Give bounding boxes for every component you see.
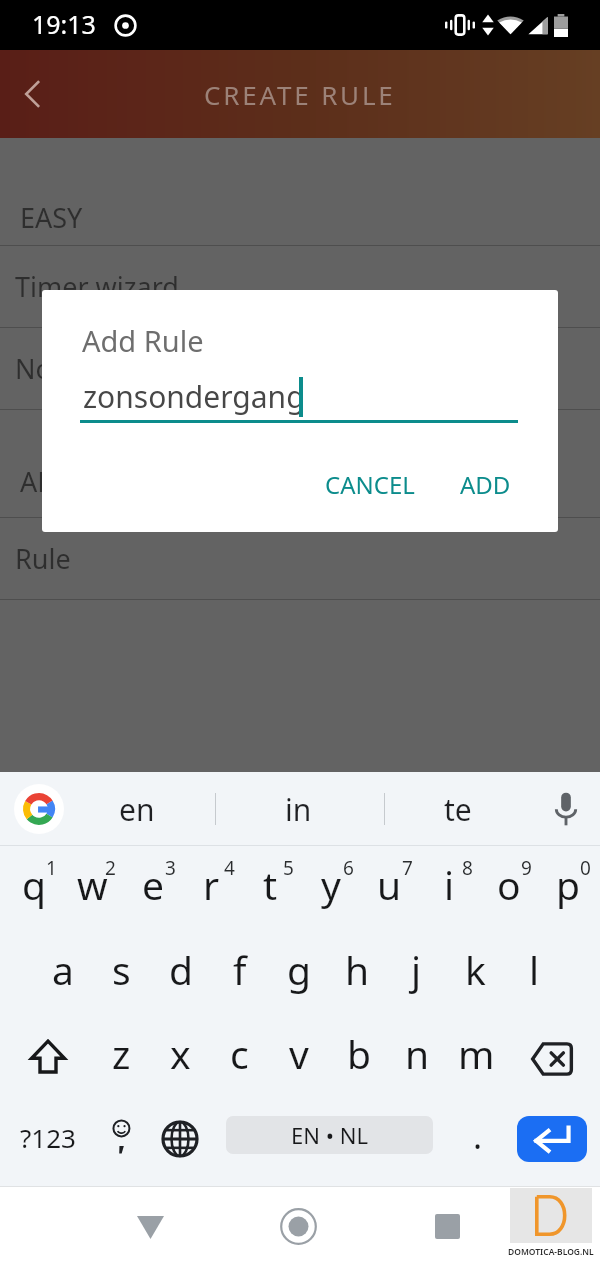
- staticText: zonsondergang: [83, 376, 305, 417]
- staticText: in: [285, 789, 312, 830]
- button[interactable]: Notification wizard: [0, 344, 600, 392]
- staticText: CANCEL: [325, 468, 415, 501]
- staticText: 8: [462, 855, 473, 881]
- staticText: ADVANCED: [20, 463, 162, 500]
- button[interactable]: j: [387, 931, 446, 1017]
- staticText: n: [405, 1027, 430, 1080]
- button[interactable]: p: [538, 846, 597, 931]
- staticText: m: [458, 1027, 495, 1080]
- button[interactable]: b: [329, 1017, 388, 1101]
- staticText: i: [444, 858, 455, 911]
- staticText: te: [444, 789, 472, 830]
- button[interactable]: v: [269, 1017, 328, 1101]
- staticText: k: [465, 943, 486, 996]
- staticText: Timer wizard: [15, 268, 179, 305]
- button[interactable]: y: [301, 846, 360, 931]
- staticText: DOMOTICA-BLOG.NL: [508, 1246, 594, 1258]
- staticText: EN • NL: [291, 1120, 368, 1150]
- button[interactable]: Back: [8, 68, 60, 120]
- staticText: 2: [105, 855, 116, 881]
- button[interactable]: Timer wizard: [0, 262, 600, 310]
- staticText: 6: [343, 855, 354, 881]
- staticText: h: [345, 943, 370, 996]
- button[interactable]: Change language: [152, 1096, 208, 1181]
- staticText: b: [347, 1027, 371, 1080]
- button[interactable]: t: [241, 846, 300, 931]
- button[interactable]: Home: [268, 1186, 328, 1267]
- button[interactable]: f: [210, 931, 269, 1017]
- button[interactable]: EN • NL: [226, 1116, 433, 1154]
- staticText: o: [497, 858, 521, 911]
- staticText: q: [22, 858, 46, 911]
- button[interactable]: g: [269, 931, 328, 1017]
- staticText: j: [411, 943, 422, 996]
- button[interactable]: en: [77, 784, 197, 834]
- button[interactable]: z: [92, 1017, 151, 1101]
- button[interactable]: x: [151, 1017, 210, 1101]
- staticText: CREATE RULE: [204, 77, 396, 112]
- staticText: Rule: [15, 540, 71, 577]
- staticText: v: [289, 1027, 309, 1080]
- staticText: w: [77, 858, 108, 911]
- staticText: 9: [521, 855, 532, 881]
- button[interactable]: k: [446, 931, 505, 1017]
- button[interactable]: c: [210, 1017, 269, 1101]
- staticText: 5: [283, 855, 294, 881]
- staticText: x: [170, 1027, 191, 1080]
- button[interactable]: Recent apps: [417, 1186, 477, 1267]
- button[interactable]: Back: [120, 1186, 180, 1267]
- button[interactable]: ADVANCED: [0, 457, 600, 505]
- button[interactable]: EASY: [0, 193, 600, 241]
- button[interactable]: CANCEL: [315, 460, 425, 508]
- staticText: c: [230, 1027, 249, 1080]
- staticText: a: [52, 943, 74, 996]
- button[interactable]: a: [33, 931, 92, 1017]
- button[interactable]: n: [388, 1017, 447, 1101]
- staticText: .: [473, 1113, 483, 1159]
- button[interactable]: Rule: [0, 534, 600, 582]
- staticText: EASY: [20, 199, 83, 236]
- staticText: z: [112, 1027, 131, 1080]
- button[interactable]: ADD: [450, 460, 521, 508]
- staticText: t: [263, 858, 278, 911]
- button[interactable]: Google Assistant: [14, 784, 64, 834]
- staticText: ?123: [20, 1120, 76, 1155]
- button[interactable]: m: [447, 1017, 506, 1101]
- staticText: l: [529, 943, 540, 996]
- button[interactable]: e: [123, 846, 182, 931]
- staticText: Add Rule: [82, 321, 204, 360]
- staticText: 4: [224, 855, 235, 881]
- button[interactable]: te: [398, 784, 518, 834]
- button[interactable]: o: [479, 846, 538, 931]
- button[interactable]: h: [328, 931, 387, 1017]
- button[interactable]: r: [182, 846, 241, 931]
- button[interactable]: l: [505, 931, 564, 1017]
- button[interactable]: in: [238, 784, 358, 834]
- staticText: d: [169, 943, 193, 996]
- button[interactable]: u: [360, 846, 419, 931]
- button[interactable]: Backspace: [518, 1017, 586, 1101]
- staticText: Notification wizard: [15, 350, 253, 387]
- staticText: 19:13: [32, 7, 96, 41]
- staticText: 7: [402, 855, 413, 881]
- staticText: g: [287, 943, 311, 996]
- button[interactable]: Enter: [517, 1116, 587, 1162]
- button[interactable]: w: [63, 846, 122, 931]
- button[interactable]: s: [92, 931, 151, 1017]
- staticText: 1: [46, 855, 57, 881]
- button[interactable]: Emoji: [95, 1098, 151, 1183]
- button[interactable]: .: [450, 1101, 506, 1186]
- staticText: p: [556, 858, 580, 911]
- button[interactable]: Shift: [16, 1015, 80, 1099]
- staticText: e: [142, 858, 164, 911]
- staticText: s: [112, 943, 131, 996]
- button[interactable]: Voice input: [543, 786, 589, 832]
- button[interactable]: d: [151, 931, 210, 1017]
- staticText: u: [377, 858, 402, 911]
- staticText: 0: [580, 855, 591, 881]
- staticText: en: [119, 789, 155, 830]
- button[interactable]: i: [420, 846, 479, 931]
- staticText: y: [321, 858, 341, 911]
- button[interactable]: ?123: [8, 1101, 88, 1186]
- button[interactable]: q: [4, 846, 63, 931]
